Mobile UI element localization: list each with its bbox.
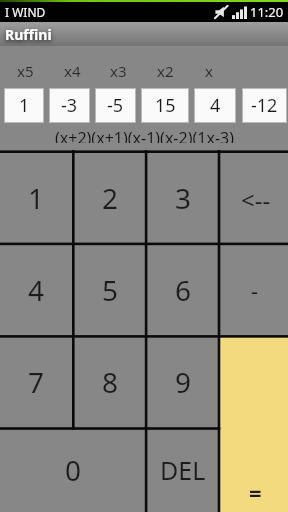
staticText: -3 xyxy=(61,93,78,118)
button[interactable] xyxy=(147,429,218,512)
staticText: 8 xyxy=(102,363,119,401)
staticText: 9 xyxy=(175,363,192,401)
staticText: 2 xyxy=(102,179,119,217)
button[interactable] xyxy=(74,337,145,427)
staticText: = xyxy=(249,477,262,507)
staticText: 5 xyxy=(102,271,119,309)
staticText: 15 xyxy=(155,93,176,118)
staticText: x2 xyxy=(157,61,174,77)
button[interactable] xyxy=(220,153,288,243)
staticText: 3 xyxy=(175,179,192,217)
button[interactable]: 15 xyxy=(142,89,188,122)
button[interactable]: -12 xyxy=(243,89,286,122)
staticText: DEL xyxy=(160,453,206,487)
staticText: -12 xyxy=(251,93,278,118)
button[interactable]: -5 xyxy=(96,89,135,122)
staticText: 4 xyxy=(210,93,221,118)
staticText: <-- xyxy=(241,183,271,216)
staticText: 4 xyxy=(28,271,45,309)
staticText: 7 xyxy=(28,363,45,401)
button[interactable] xyxy=(220,337,288,512)
staticText: Ruffini xyxy=(5,25,52,44)
staticText: x4 xyxy=(64,61,81,77)
staticText: 11:20 xyxy=(250,3,284,21)
staticText: 1 xyxy=(28,179,45,217)
staticText: x3 xyxy=(110,61,127,77)
staticText: - xyxy=(251,275,259,305)
button[interactable] xyxy=(147,337,218,427)
staticText: 6 xyxy=(175,271,192,309)
button[interactable] xyxy=(74,245,145,335)
staticText: 0 xyxy=(65,451,82,489)
button[interactable] xyxy=(0,153,72,243)
staticText: x xyxy=(205,61,213,77)
staticText: -5 xyxy=(107,93,124,118)
button[interactable]: 1 xyxy=(5,89,43,122)
staticText: x5 xyxy=(17,61,34,77)
button[interactable] xyxy=(147,245,218,335)
button[interactable] xyxy=(147,153,218,243)
button[interactable] xyxy=(0,245,72,335)
button[interactable] xyxy=(220,245,288,335)
staticText: I WIND xyxy=(5,4,46,20)
staticText: 1 xyxy=(19,93,30,118)
staticText: (x+2)(x+1)(x-1)(x-2)(1x-3) xyxy=(55,127,234,143)
button[interactable]: 4 xyxy=(195,89,235,122)
button[interactable] xyxy=(74,153,145,243)
button[interactable] xyxy=(0,337,72,427)
button[interactable]: -3 xyxy=(50,89,89,122)
button[interactable] xyxy=(0,429,145,512)
